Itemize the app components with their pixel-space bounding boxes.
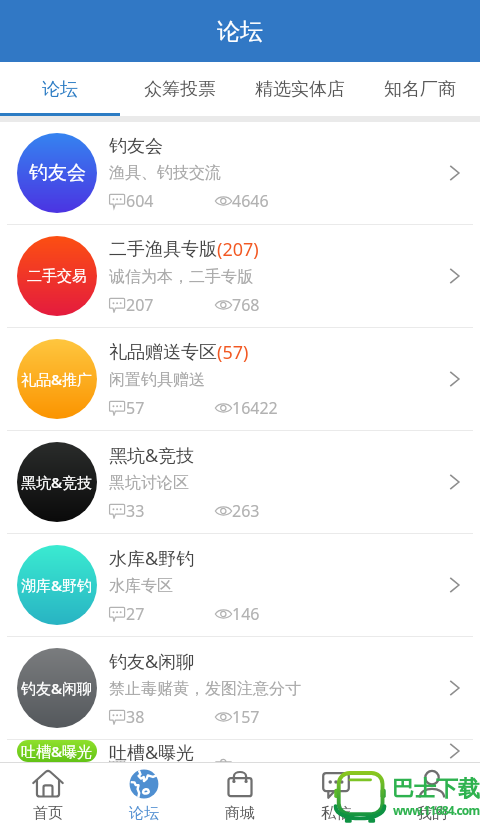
staticText: 吐槽&曝光 xyxy=(21,741,93,761)
button[interactable]: 知名厂商 xyxy=(360,62,480,116)
staticText: 57 xyxy=(126,397,145,419)
staticText: 27 xyxy=(126,603,145,625)
staticText: 水库&野钓 xyxy=(109,546,195,571)
staticText: 768 xyxy=(232,294,260,316)
staticText: 精选实体店 xyxy=(255,78,345,101)
staticText: 论坛 xyxy=(217,17,263,46)
button[interactable]: 论坛 xyxy=(0,62,120,116)
staticText: 论坛 xyxy=(42,78,78,101)
button[interactable]: 二手交易 xyxy=(0,225,480,327)
staticText: 论坛 xyxy=(129,804,159,823)
staticText: 首页 xyxy=(33,804,63,823)
staticText: 钓友&闲聊 xyxy=(109,649,195,674)
staticText: 巴士下载 xyxy=(392,775,480,803)
button[interactable]: Profile xyxy=(384,762,480,826)
staticText: 黑坑&竞技 xyxy=(109,443,195,468)
staticText: 礼品&推广 xyxy=(21,369,93,389)
staticText: 禁止毒赌黄，发图注意分寸 xyxy=(109,679,301,699)
button[interactable]: 礼品&推广 xyxy=(0,328,480,430)
staticText: 157 xyxy=(232,706,260,728)
button[interactable]: 精选实体店 xyxy=(240,62,360,116)
staticText: 207 xyxy=(126,294,154,316)
staticText: 146 xyxy=(232,603,260,625)
staticText: 我的 xyxy=(417,804,447,823)
staticText: 钓友会 xyxy=(29,161,86,185)
staticText: 263 xyxy=(232,500,260,522)
button[interactable]: 吐槽&曝光 xyxy=(0,740,480,762)
staticText: 4646 xyxy=(232,190,269,212)
staticText: 33 xyxy=(126,500,145,522)
staticText: 二手渔具专版 xyxy=(109,238,217,261)
button[interactable]: Messages xyxy=(288,762,384,826)
staticText: 16422 xyxy=(232,397,278,419)
staticText: 黑坑讨论区 xyxy=(109,473,189,493)
button[interactable]: 钓友&闲聊 xyxy=(0,637,480,739)
button[interactable]: Shop xyxy=(192,762,288,826)
staticText: 众筹投票 xyxy=(144,78,216,101)
staticText: 604 xyxy=(126,190,154,212)
staticText: 黑坑&竞技 xyxy=(21,472,93,492)
staticText: (57) xyxy=(217,340,249,365)
staticText: 商城 xyxy=(225,804,255,823)
staticText: 诚信为本，二手专版 xyxy=(109,267,253,287)
staticText: 38 xyxy=(126,706,145,728)
staticText: 吐槽&曝光 xyxy=(109,740,195,762)
staticText: 钓友&闲聊 xyxy=(21,678,93,698)
staticText: 知名厂商 xyxy=(384,78,456,101)
staticText: 二手交易 xyxy=(27,267,87,286)
button[interactable]: Home xyxy=(0,762,96,826)
staticText: 钓友会 xyxy=(109,135,163,158)
staticText: 渔具、钓技交流 xyxy=(109,163,221,183)
button[interactable]: 钓友会 xyxy=(0,122,480,224)
staticText: 私信 xyxy=(321,804,351,823)
button[interactable]: Forum xyxy=(96,762,192,826)
staticText: www.11684.com xyxy=(393,802,480,818)
staticText: 闲置钓具赠送 xyxy=(109,370,205,390)
staticText: 湖库&野钓 xyxy=(21,575,93,595)
button[interactable]: 湖库&野钓 xyxy=(0,534,480,636)
staticText: (207) xyxy=(217,237,259,262)
staticText: 礼品赠送专区 xyxy=(109,341,217,364)
button[interactable]: 黑坑&竞技 xyxy=(0,431,480,533)
staticText: 水库专区 xyxy=(109,576,173,596)
button[interactable]: 众筹投票 xyxy=(120,62,240,116)
